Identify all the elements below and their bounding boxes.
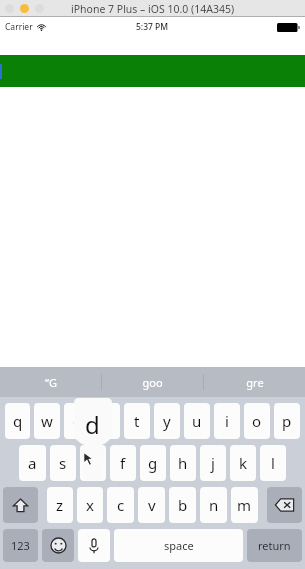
button[interactable]: y	[154, 403, 180, 439]
staticText: d	[85, 408, 100, 441]
staticText: goo	[142, 375, 163, 390]
button[interactable]: v	[138, 487, 165, 523]
staticText: iPhone 7 Plus – iOS 10.0 (14A345)	[71, 2, 235, 16]
staticText: Carrier	[5, 21, 33, 33]
button[interactable]: w	[34, 403, 60, 439]
button[interactable]: gre	[204, 367, 305, 397]
staticText: q	[13, 411, 23, 431]
button[interactable]: Shift	[3, 487, 38, 523]
button[interactable]: Dictation	[78, 529, 110, 562]
staticText: w	[41, 411, 53, 431]
staticText: g	[148, 453, 158, 473]
staticText: d	[88, 453, 98, 473]
button[interactable]: j	[200, 445, 226, 481]
staticText: t	[134, 411, 140, 431]
button[interactable]: e	[64, 403, 90, 439]
button[interactable]: d	[80, 445, 106, 481]
button[interactable]: 123	[3, 529, 38, 562]
button[interactable]	[0, 55, 305, 87]
staticText: j	[211, 453, 215, 473]
staticText: return	[258, 538, 291, 553]
button[interactable]: space	[114, 529, 243, 562]
staticText: 5:37 PM	[136, 21, 169, 33]
staticText: l	[271, 453, 275, 473]
button[interactable]: n	[200, 487, 227, 523]
button[interactable]: x	[77, 487, 103, 523]
staticText: x	[86, 495, 94, 515]
button[interactable]: o	[244, 403, 270, 439]
button[interactable]: l	[260, 445, 286, 481]
button[interactable]: z	[47, 487, 73, 523]
staticText: a	[28, 453, 37, 473]
staticText: b	[178, 495, 188, 515]
staticText: h	[178, 453, 188, 473]
staticText: c	[117, 495, 125, 515]
button[interactable]: s	[50, 445, 76, 481]
button[interactable]: q	[5, 403, 30, 439]
button[interactable]: “G	[0, 367, 101, 397]
staticText: y	[163, 411, 171, 431]
button[interactable]: m	[231, 487, 258, 523]
button[interactable]: return	[247, 529, 302, 562]
button[interactable]: goo	[102, 367, 203, 397]
button[interactable]: p	[274, 403, 300, 439]
button[interactable]: k	[230, 445, 256, 481]
staticText: f	[120, 453, 126, 473]
button[interactable]: i	[214, 403, 240, 439]
staticText: o	[252, 411, 262, 431]
staticText: k	[239, 453, 248, 473]
staticText: gre	[246, 375, 264, 390]
staticText: n	[209, 495, 219, 515]
button[interactable]: Minimize	[20, 4, 29, 13]
button[interactable]: r	[94, 403, 120, 439]
staticText: u	[192, 411, 202, 431]
button[interactable]: t	[124, 403, 150, 439]
button[interactable]: Zoom	[35, 4, 44, 13]
staticText: “G	[45, 375, 57, 390]
button[interactable]: b	[169, 487, 196, 523]
staticText: m	[237, 495, 252, 515]
staticText: v	[148, 495, 156, 515]
button[interactable]: f	[110, 445, 136, 481]
button[interactable]: h	[170, 445, 196, 481]
button[interactable]: Close	[5, 4, 14, 13]
staticText: z	[56, 495, 64, 515]
staticText: i	[225, 411, 229, 431]
button[interactable]: u	[184, 403, 210, 439]
button[interactable]: g	[140, 445, 166, 481]
staticText: 123	[11, 538, 30, 553]
button[interactable]: Emoji	[42, 529, 74, 562]
staticText: s	[59, 453, 67, 473]
staticText: space	[164, 538, 194, 553]
button[interactable]: c	[107, 487, 134, 523]
button[interactable]: a	[19, 445, 46, 481]
staticText: p	[282, 411, 292, 431]
button[interactable]: Backspace	[267, 487, 302, 523]
